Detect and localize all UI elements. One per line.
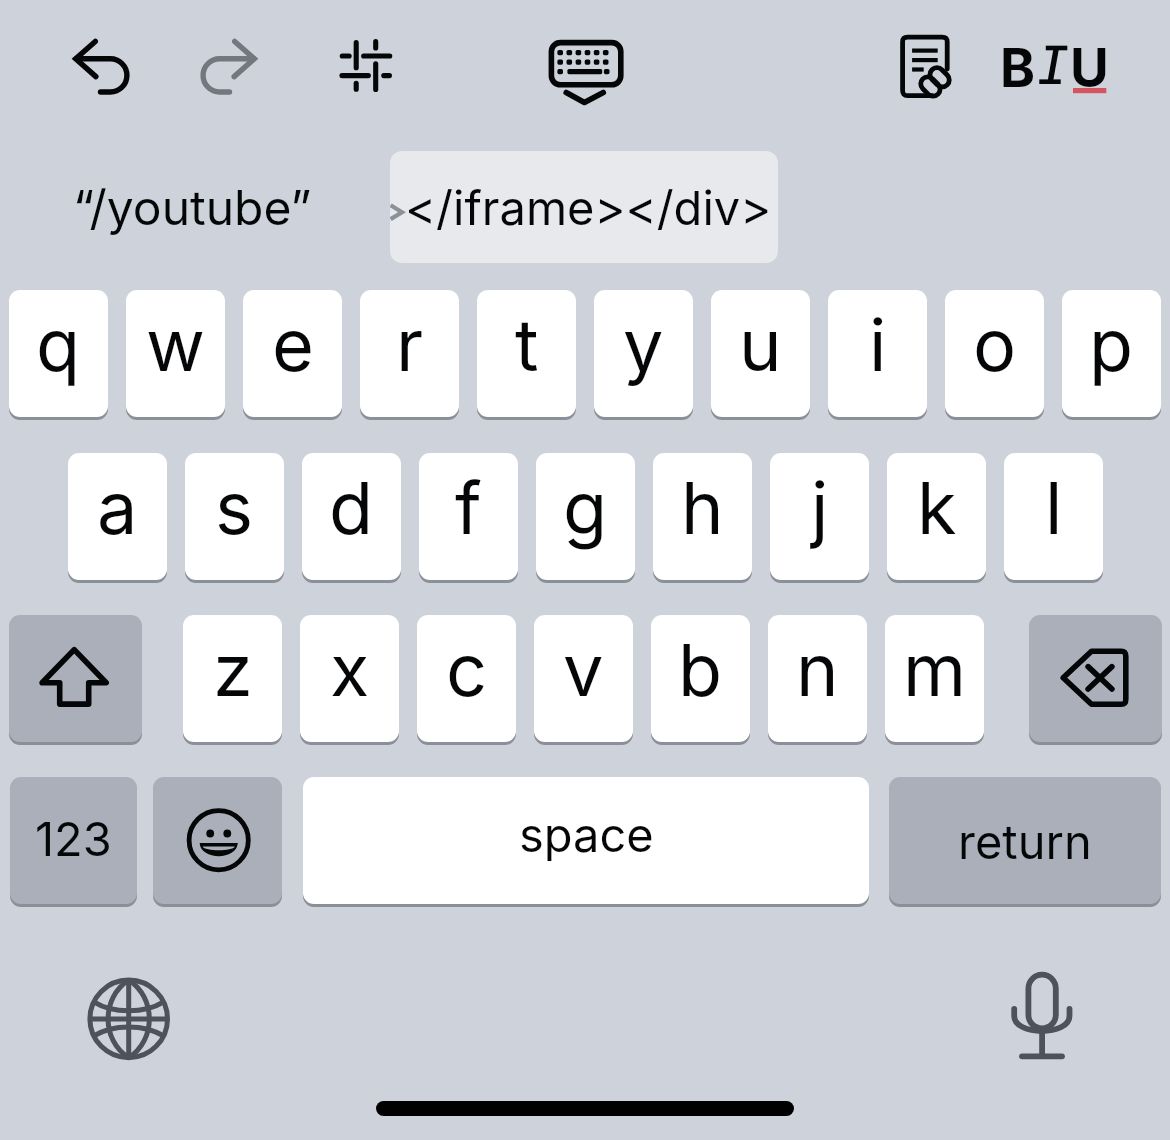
button[interactable]: h [653,453,752,580]
staticText: n [796,626,839,713]
staticText: q [36,301,81,388]
button[interactable]: o [945,290,1044,417]
staticText: return [958,813,1092,870]
button[interactable]: f [419,453,518,580]
button[interactable]: k [887,453,986,580]
staticText: “/youtube” [73,178,312,236]
button[interactable]: r [360,290,459,417]
staticText: z [213,626,253,713]
button[interactable]: Voice input [1008,968,1078,1068]
staticText: o [973,301,1017,388]
staticText: p [1089,301,1134,388]
button[interactable]: e [243,290,342,417]
staticText: w [146,301,205,388]
staticText: d [329,464,374,551]
staticText: u [739,301,782,388]
button[interactable]: Switch keyboard [84,973,174,1065]
button[interactable]: s [185,453,284,580]
button[interactable]: Text formatting [328,32,398,102]
staticText: i [869,301,887,388]
staticText: a [97,464,138,551]
button[interactable]: m [885,615,984,742]
staticText: v [563,626,604,713]
button[interactable]: d [302,453,401,580]
staticText: B [1000,36,1036,100]
button[interactable]: space [303,777,869,904]
button[interactable]: Hide keyboard [545,34,625,106]
button[interactable] [153,777,282,904]
staticText: c [446,626,488,713]
staticText: y [623,301,664,388]
button[interactable] [9,615,142,742]
staticText: f [455,464,482,551]
button[interactable]: Undo [60,26,140,106]
button[interactable]: l [1004,453,1103,580]
button[interactable]: t [477,290,576,417]
button[interactable]: </iframe></div> [390,151,778,263]
button[interactable]: z [183,615,282,742]
staticText: g [563,464,608,551]
staticText: 123 [35,810,112,867]
button[interactable]: p [1062,290,1161,417]
button[interactable]: w [126,290,225,417]
button[interactable]: y [594,290,693,417]
button[interactable] [1029,615,1162,742]
staticText: space [519,806,654,863]
button[interactable]: b [651,615,750,742]
staticText: b [678,626,723,713]
staticText: r [396,301,424,388]
button[interactable]: Insert link [898,33,958,105]
staticText: </iframe></div> [405,179,772,236]
staticText: t [515,301,539,388]
staticText: k [917,464,957,551]
button[interactable]: “/youtube” [55,152,335,262]
staticText: m [903,626,967,713]
button[interactable]: u [711,290,810,417]
button[interactable]: return [889,777,1161,904]
staticText: x [330,626,370,713]
button[interactable]: q [9,290,108,417]
button[interactable]: Redo [190,26,270,106]
staticText: j [811,464,829,551]
button[interactable]: i [828,290,927,417]
button[interactable]: 123 [10,777,137,904]
button[interactable]: v [534,615,633,742]
staticText: l [1045,464,1063,551]
button[interactable]: c [417,615,516,742]
button[interactable]: j [770,453,869,580]
staticText: U [1070,36,1109,100]
button[interactable]: g [536,453,635,580]
staticText: s [215,464,254,551]
staticText: e [272,301,314,388]
button[interactable]: B [995,30,1115,100]
button[interactable]: n [768,615,867,742]
button[interactable]: x [300,615,399,742]
staticText: h [681,464,724,551]
button[interactable]: a [68,453,167,580]
